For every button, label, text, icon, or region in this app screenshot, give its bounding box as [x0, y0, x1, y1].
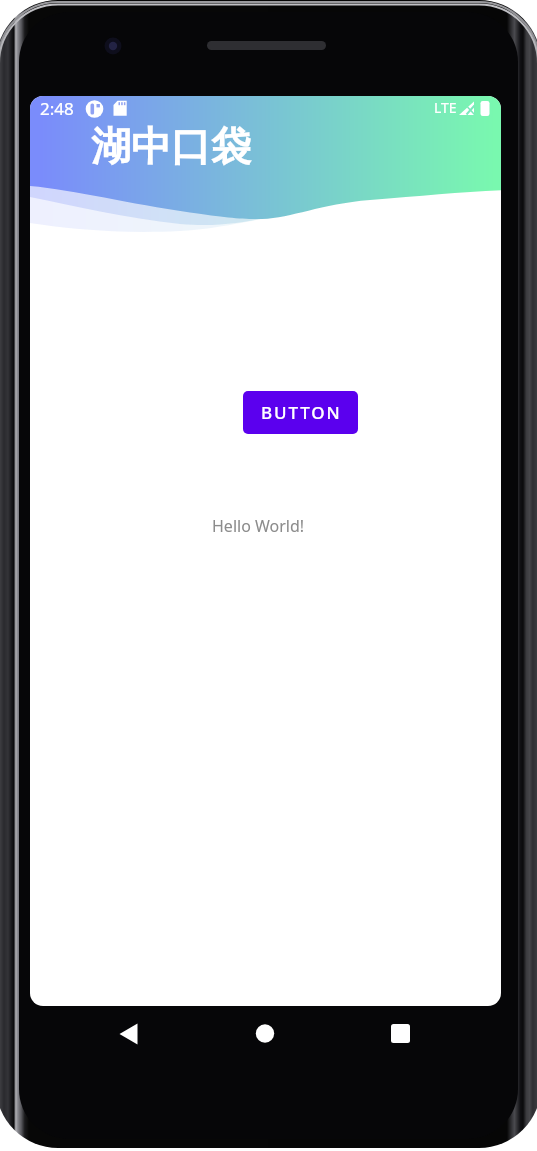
button[interactable]: Home: [240, 1008, 290, 1058]
staticText: LTE: [434, 98, 457, 117]
button[interactable]: Recent apps: [375, 1008, 425, 1058]
button[interactable]: BUTTON: [243, 391, 358, 434]
button[interactable]: Back: [104, 1008, 154, 1058]
staticText: 2:48: [40, 97, 74, 120]
staticText: BUTTON: [261, 401, 342, 424]
staticText: 湖中口袋: [91, 121, 251, 171]
staticText: Hello World!: [212, 515, 305, 537]
